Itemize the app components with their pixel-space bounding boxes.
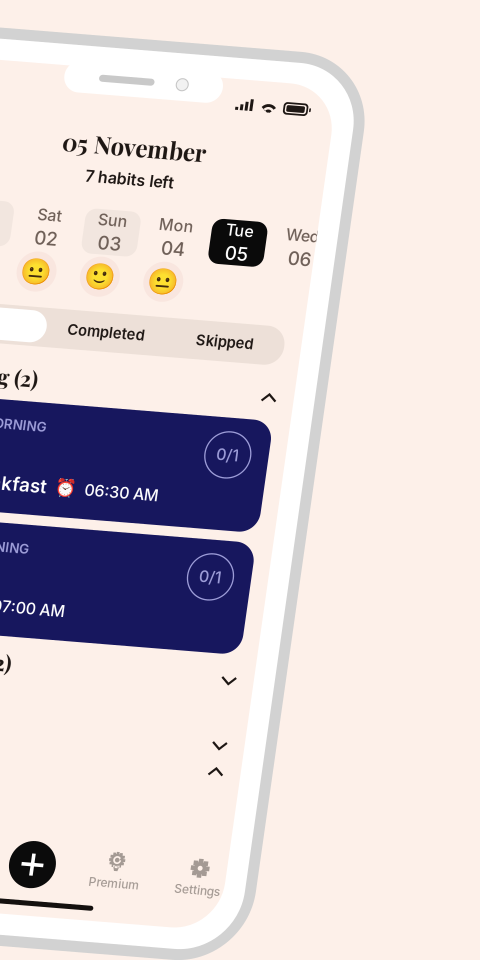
staticText: 🙂: [163, 191, 195, 221]
staticText: 07:00 AM: [118, 530, 192, 550]
staticText: 03: [172, 161, 196, 184]
button[interactable]: Wed: [348, 139, 404, 184]
button[interactable]: Evening (3): [17, 648, 373, 672]
button[interactable]: Morning (2): [17, 300, 373, 324]
staticText: 06:30 AM: [194, 408, 269, 428]
button[interactable]: EVERY MORNING: [17, 335, 373, 447]
staticText: Afternoon (2): [17, 581, 146, 609]
button[interactable]: Premium: [237, 769, 321, 817]
button[interactable]: Add habit: [153, 769, 237, 817]
staticText: Skipped: [284, 252, 342, 270]
staticText: 7 habits left: [150, 98, 240, 117]
button[interactable]: Tue: [284, 139, 340, 184]
button[interactable]: Sun: [156, 139, 212, 184]
staticText: 😐: [0, 191, 3, 221]
staticText: Morning (2): [17, 298, 132, 326]
staticText: 😐: [227, 191, 259, 221]
staticText: 😐: [99, 191, 131, 221]
staticText: EVERY MORNING: [35, 473, 147, 489]
staticText: Eat breakfast: [35, 407, 156, 429]
staticText: ⏰: [88, 530, 110, 550]
button[interactable]: Sat: [92, 139, 148, 184]
button[interactable]: Completed: [133, 241, 253, 280]
button[interactable]: Skipped: [253, 241, 373, 280]
staticText: 0/1: [320, 363, 343, 382]
staticText: ⏰: [164, 408, 186, 428]
staticText: Wed: [359, 140, 393, 159]
staticText: 🙂: [35, 191, 67, 221]
button[interactable]: Fri: [28, 139, 84, 184]
staticText: 05 November: [122, 59, 267, 91]
staticText: EVERY MORNING: [35, 351, 147, 367]
staticText: 02: [108, 161, 132, 184]
staticText: Fri: [46, 140, 65, 159]
button[interactable]: EVERY MORNING: [17, 457, 373, 569]
staticText: Completed: [154, 252, 232, 270]
button[interactable]: All day (1): [17, 674, 373, 698]
staticText: Premium: [253, 798, 304, 812]
button[interactable]: All: [17, 241, 133, 280]
staticText: Sat: [108, 140, 132, 159]
staticText: Sun: [169, 140, 199, 159]
button[interactable]: Afternoon (2): [17, 583, 373, 607]
